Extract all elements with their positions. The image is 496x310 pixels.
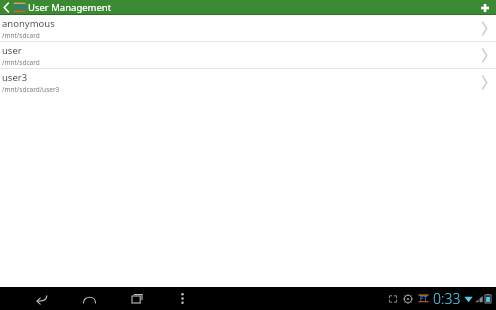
button[interactable]: Recent apps: [120, 287, 154, 310]
button[interactable]: Navigate up: [0, 0, 13, 15]
staticText: /mnt/sdcard: [2, 58, 40, 67]
button[interactable]: Add user: [474, 0, 496, 15]
staticText: FTP: [418, 294, 429, 303]
button[interactable]: More options: [168, 287, 196, 310]
staticText: anonymous: [2, 17, 55, 30]
staticText: user: [2, 44, 22, 57]
staticText: User Management: [28, 1, 112, 14]
button[interactable]: Home: [72, 287, 106, 310]
button[interactable]: anonymous: [0, 15, 496, 41]
button[interactable]: user: [0, 42, 496, 68]
staticText: /mnt/sdcard: [2, 31, 40, 40]
staticText: user3: [2, 71, 28, 84]
button[interactable]: Back: [24, 287, 58, 310]
staticText: 0:33: [433, 289, 461, 308]
staticText: /mnt/sdcard/user3: [2, 85, 60, 94]
button[interactable]: user3: [0, 69, 496, 95]
staticText: FTP: [14, 3, 26, 12]
